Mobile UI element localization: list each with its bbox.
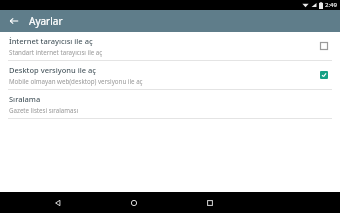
staticText: Mobile olmayan web(desktop) versiyonu il… <box>9 77 143 85</box>
button[interactable]: Home <box>121 192 147 213</box>
staticText: İnternet tarayıcısı ile aç <box>9 36 93 46</box>
button[interactable]: Unchecked <box>315 37 333 55</box>
staticText: 2:49 <box>325 1 337 9</box>
button[interactable]: Back <box>45 192 71 213</box>
button[interactable]: Recent apps <box>197 192 223 213</box>
button[interactable]: İnternet tarayıcısı ile aç <box>0 32 340 60</box>
button[interactable]: Desktop versiyonu ile aç <box>0 61 340 89</box>
staticText: Ayarlar <box>29 14 63 28</box>
button[interactable]: Checked <box>315 66 333 84</box>
button[interactable]: Back <box>6 13 22 29</box>
button[interactable]: Sıralama <box>0 90 340 118</box>
staticText: Standart internet tarayıcısı ile aç <box>9 48 103 56</box>
staticText: Sıralama <box>9 94 41 104</box>
staticText: Desktop versiyonu ile aç <box>9 65 96 75</box>
staticText: Gazete listesi sıralaması <box>9 106 79 114</box>
